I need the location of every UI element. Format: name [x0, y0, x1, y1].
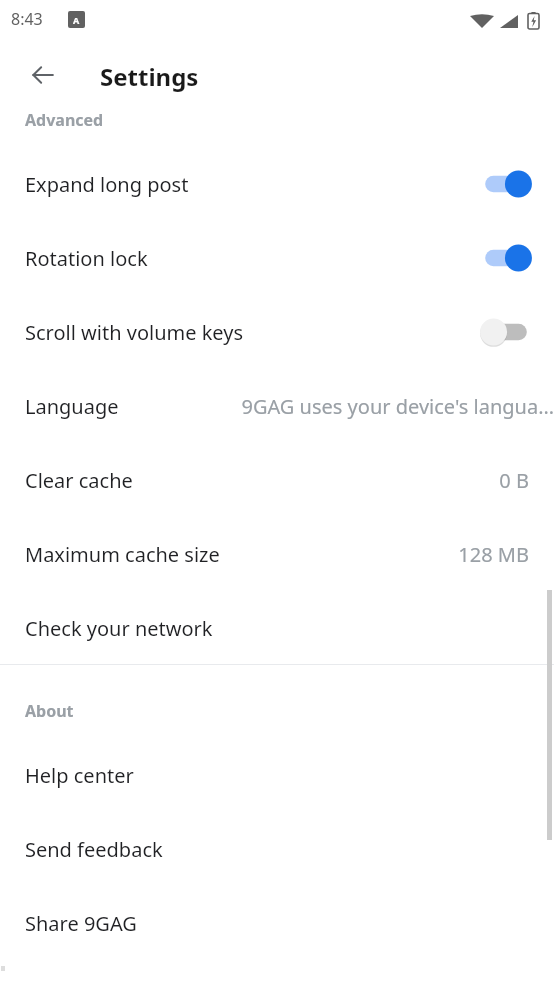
- staticText: A: [73, 14, 80, 26]
- staticText: Advanced: [25, 109, 104, 131]
- staticText: Settings: [100, 60, 199, 93]
- staticText: Maximum cache size: [25, 541, 220, 568]
- staticText: Check your network: [25, 615, 213, 642]
- staticText: Help center: [25, 762, 134, 789]
- button[interactable]: Clear cache: [0, 443, 554, 517]
- button[interactable]: Send feedback: [0, 812, 554, 886]
- staticText: Rotation lock: [25, 245, 480, 272]
- staticText: 9GAG uses your device's langua…: [131, 393, 554, 420]
- button[interactable]: Share 9GAG: [0, 886, 554, 960]
- button[interactable]: Scroll with volume keys: [0, 295, 554, 369]
- button[interactable]: Rotation lock: [0, 221, 554, 295]
- staticText: 8:43: [11, 8, 43, 30]
- button[interactable]: Back: [19, 51, 67, 99]
- staticText: About: [25, 700, 74, 722]
- button[interactable]: Help center: [0, 738, 554, 812]
- staticText: Share 9GAG: [25, 910, 137, 937]
- staticText: Send feedback: [25, 836, 163, 863]
- button[interactable]: Expand long post: [0, 147, 554, 221]
- staticText: Clear cache: [25, 467, 133, 494]
- staticText: Expand long post: [25, 171, 480, 198]
- button[interactable]: Check your network: [0, 591, 554, 665]
- button[interactable]: Language: [0, 369, 554, 443]
- button[interactable]: Maximum cache size: [0, 517, 554, 591]
- staticText: Language: [25, 393, 119, 420]
- staticText: 0 B: [145, 467, 529, 494]
- staticText: Scroll with volume keys: [25, 319, 480, 346]
- staticText: 128 MB: [232, 541, 529, 568]
